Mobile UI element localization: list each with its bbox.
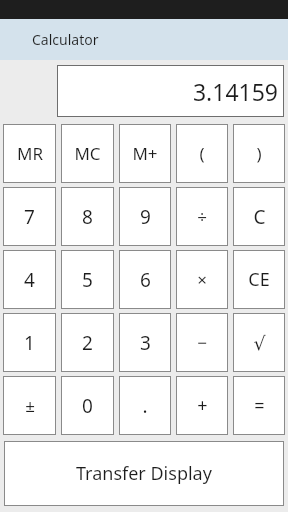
staticText: 9	[140, 204, 151, 230]
button[interactable]: MR	[3, 124, 56, 183]
button[interactable]: 1	[3, 313, 56, 372]
staticText: )	[256, 142, 262, 165]
staticText: Calculator	[32, 30, 99, 49]
button[interactable]: +	[176, 376, 228, 435]
staticText: +	[197, 393, 208, 418]
staticText: (	[199, 142, 205, 165]
staticText: ÷	[197, 205, 207, 228]
button[interactable]: −	[176, 313, 228, 372]
staticText: 3.14159	[192, 76, 278, 107]
button[interactable]: 3.14159	[57, 65, 284, 117]
button[interactable]: 7	[3, 187, 56, 246]
staticText: ×	[197, 268, 207, 291]
button[interactable]: C	[233, 187, 285, 246]
button[interactable]: 3	[119, 313, 171, 372]
staticText: 8	[82, 204, 93, 230]
staticText: 7	[24, 204, 35, 230]
staticText: M+	[132, 142, 158, 165]
staticText: 5	[82, 267, 93, 293]
button[interactable]: √	[233, 313, 285, 372]
button[interactable]: ±	[3, 376, 56, 435]
staticText: C	[253, 204, 266, 230]
staticText: −	[197, 331, 207, 354]
staticText: =	[254, 393, 265, 418]
staticText: MC	[74, 142, 101, 165]
staticText: ±	[25, 394, 35, 417]
staticText: CE	[248, 267, 270, 292]
button[interactable]: )	[233, 124, 285, 183]
staticText: √	[253, 332, 266, 354]
staticText: 3	[140, 330, 151, 356]
button[interactable]: MC	[61, 124, 114, 183]
button[interactable]: 2	[61, 313, 114, 372]
button[interactable]: 9	[119, 187, 171, 246]
button[interactable]: 8	[61, 187, 114, 246]
staticText: Transfer Display	[76, 461, 212, 486]
button[interactable]: (	[176, 124, 228, 183]
button[interactable]: ÷	[176, 187, 228, 246]
button[interactable]: M+	[119, 124, 171, 183]
button[interactable]: ×	[176, 250, 228, 309]
button[interactable]: 4	[3, 250, 56, 309]
button[interactable]: Transfer Display	[4, 441, 284, 506]
button[interactable]: 0	[61, 376, 114, 435]
staticText: 6	[140, 267, 151, 293]
staticText: .	[142, 393, 148, 419]
button[interactable]: 5	[61, 250, 114, 309]
staticText: MR	[17, 142, 43, 165]
button[interactable]: .	[119, 376, 171, 435]
button[interactable]: 6	[119, 250, 171, 309]
staticText: 0	[82, 393, 93, 419]
button[interactable]: =	[233, 376, 285, 435]
staticText: 2	[82, 330, 93, 356]
staticText: 1	[24, 330, 35, 356]
button[interactable]: CE	[233, 250, 285, 309]
staticText: 4	[24, 267, 35, 293]
